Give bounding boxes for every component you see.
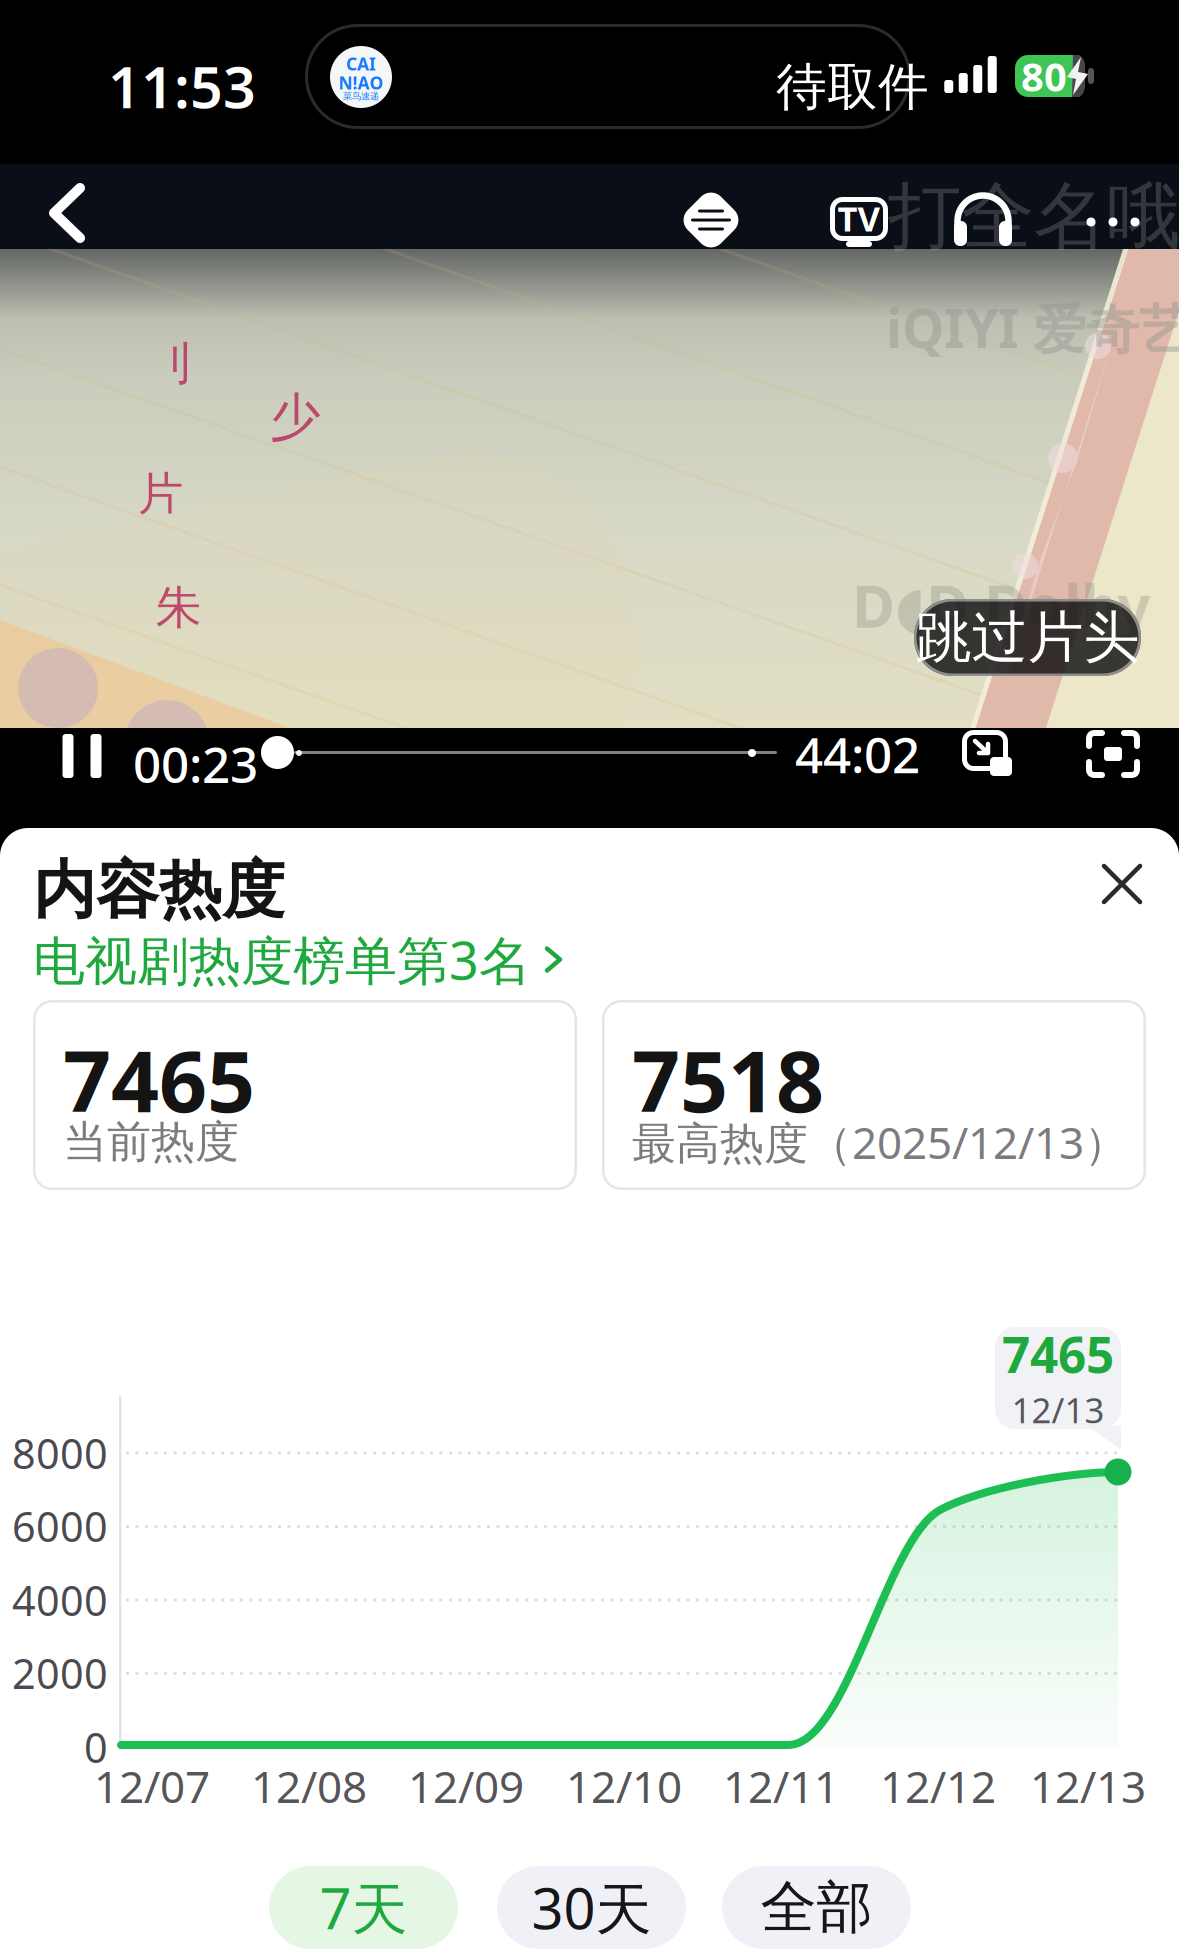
staticText: 44:02 (795, 721, 920, 787)
staticText: 少 (270, 386, 321, 448)
staticText: iQIYI 爱奇艺 (886, 292, 1179, 363)
staticText: 30天 (531, 1870, 651, 1945)
staticText: 12/12 (880, 1757, 996, 1815)
staticText: 片 (138, 466, 183, 522)
staticText: 00:23 (133, 731, 258, 796)
button[interactable]: China Mobile (679, 188, 743, 252)
button[interactable]: 30天 (497, 1866, 686, 1949)
staticText: 全部 (760, 1873, 872, 1942)
staticText: 12/09 (408, 1757, 524, 1815)
staticText: 12/08 (251, 1757, 367, 1815)
staticText: 朱 (156, 580, 201, 636)
staticText: 80 (1021, 49, 1067, 102)
staticText: 12/11 (723, 1757, 839, 1815)
staticText: 内容热度 (33, 852, 285, 929)
staticText: TV (837, 195, 880, 241)
button[interactable]: 电视剧热度榜单第3名 (33, 925, 563, 994)
button[interactable]: 跳过片头 (914, 599, 1141, 676)
button[interactable]: Back (0, 0, 120, 85)
staticText: 刂 (150, 336, 195, 392)
staticText: 0 (84, 1720, 108, 1774)
button[interactable]: Cast to TV (828, 190, 890, 248)
staticText: 12/13 (1030, 1757, 1146, 1815)
button[interactable]: Picture in picture (962, 730, 1014, 778)
button[interactable]: Close (1100, 862, 1144, 906)
button[interactable]: Pause (52, 729, 112, 783)
staticText: 菜鸟速递 (343, 90, 379, 102)
staticText: 电视剧热度榜单第3名 (33, 925, 531, 994)
staticText: 11:53 (108, 48, 256, 124)
staticText: 12/10 (566, 1757, 682, 1815)
staticText: 7518 (632, 1024, 824, 1135)
button[interactable]: More (1078, 202, 1148, 242)
staticText: 打全名哦太家 (888, 164, 1179, 262)
staticText: 当前热度 (63, 1115, 239, 1169)
staticText: 跳过片头 (915, 603, 1139, 672)
staticText: 7465 (63, 1024, 255, 1135)
button[interactable]: Listen (954, 192, 1012, 248)
button[interactable]: Fullscreen (1086, 730, 1140, 778)
staticText: 最高热度（2025/12/13） (632, 1113, 1128, 1171)
staticText: CAI (346, 52, 376, 75)
staticText: 4000 (12, 1573, 108, 1627)
staticText: D◖D Dolby (852, 566, 1150, 644)
staticText: 2000 (12, 1646, 108, 1700)
staticText: 待取件 (776, 56, 929, 118)
staticText: 12/13 (1011, 1387, 1104, 1433)
button[interactable]: 全部 (722, 1866, 911, 1949)
staticText: 7465 (1002, 1321, 1114, 1387)
staticText: 7天 (319, 1870, 407, 1945)
staticText: 8000 (12, 1426, 108, 1480)
button[interactable]: 7天 (269, 1866, 458, 1949)
staticText: 6000 (12, 1499, 108, 1553)
staticText: 12/07 (94, 1757, 210, 1815)
staticText: N!AO (338, 71, 383, 94)
